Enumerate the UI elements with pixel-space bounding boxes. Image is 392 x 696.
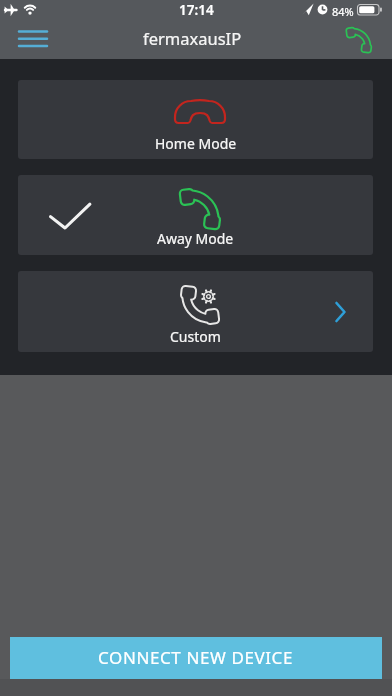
staticText: 17:14 (179, 1, 214, 19)
button[interactable]: Custom (18, 271, 373, 352)
staticText: CONNECT NEW DEVICE (98, 646, 294, 669)
button[interactable]: Home Mode (18, 80, 373, 159)
button[interactable]: CONNECT NEW DEVICE (10, 637, 382, 679)
button[interactable]: Away Mode (18, 175, 373, 255)
staticText: 84% (332, 4, 354, 19)
staticText: fermaxausIP (143, 27, 242, 49)
staticText: Custom (170, 327, 221, 346)
button[interactable] (8, 22, 58, 59)
staticText: Away Mode (157, 229, 234, 248)
button[interactable] (340, 22, 380, 59)
staticText: Home Mode (155, 134, 237, 153)
